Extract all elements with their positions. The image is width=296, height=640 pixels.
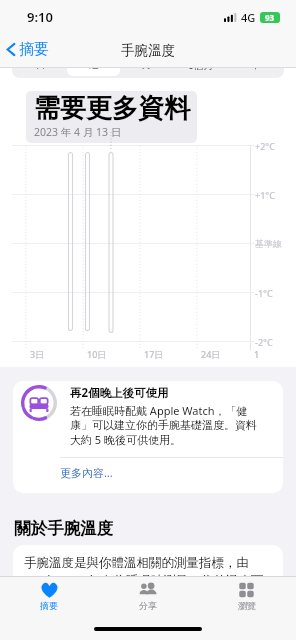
staticText: 10日	[87, 348, 107, 360]
staticText: 3日	[30, 348, 45, 360]
staticText: 24日	[201, 348, 221, 360]
button[interactable]: 分享	[98, 577, 197, 621]
button[interactable]: 摘要	[5, 40, 55, 59]
staticText: 9:10	[27, 8, 53, 26]
staticText: -2°C	[255, 336, 273, 348]
button[interactable]: 6個月	[174, 53, 228, 76]
staticText: 分享	[139, 600, 157, 611]
staticText: 月	[142, 58, 152, 71]
button[interactable]: 摘要	[0, 577, 98, 621]
staticText: 更多內容…	[60, 465, 113, 480]
button[interactable]: 日	[14, 53, 67, 76]
staticText: +2°C	[255, 140, 275, 152]
staticText: 17日	[144, 348, 164, 360]
staticText: 1	[254, 348, 260, 360]
button[interactable]: 日	[12, 51, 284, 78]
staticText: 2023 年 4 月 13 日	[34, 125, 122, 139]
button[interactable]: 瀏覽	[197, 577, 296, 621]
staticText: 年	[250, 58, 260, 71]
staticText: 基準線	[255, 238, 282, 249]
staticText: 再2個晚上後可使用	[70, 385, 169, 401]
button[interactable]: 週	[67, 53, 120, 76]
staticText: 若在睡眠時配戴 Apple Watch，「健康」可以建立你的手腕基礎溫度。資料大…	[70, 403, 261, 448]
staticText: 摘要	[40, 600, 58, 611]
staticText: -1°C	[255, 287, 273, 299]
button[interactable]: 月	[120, 53, 174, 76]
button[interactable]: 手腕溫度是與你體溫相關的測量指標，由 Apple Watch 在你睡眠時測量。你…	[13, 545, 283, 605]
staticText: 需要更多資料	[34, 92, 190, 125]
button[interactable]: 再2個晚上後可使用	[13, 381, 283, 493]
button[interactable]: 更多內容…	[13, 458, 283, 493]
staticText: +1°C	[255, 189, 275, 201]
staticText: 手腕溫度	[121, 42, 175, 59]
staticText: 日	[36, 58, 46, 71]
staticText: 週	[89, 58, 99, 71]
staticText: 瀏覽	[238, 600, 256, 611]
staticText: 關於手腕溫度	[14, 518, 113, 539]
staticText: 手腕溫度是與你體溫相關的測量指標，由 Apple Watch 在你睡眠時測量。你…	[24, 554, 273, 605]
button[interactable]: 年	[228, 53, 282, 76]
staticText: 摘要	[19, 40, 49, 59]
staticText: 93	[265, 12, 275, 23]
staticText: 6個月	[188, 58, 214, 72]
staticText: 4G	[241, 10, 256, 25]
